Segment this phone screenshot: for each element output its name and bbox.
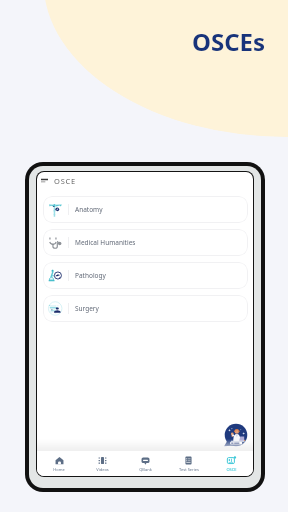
button[interactable]: Pathology bbox=[43, 262, 248, 289]
staticText: OSCE bbox=[226, 467, 237, 472]
staticText: Videos bbox=[96, 467, 109, 472]
button[interactable]: Menu bbox=[38, 174, 51, 187]
staticText: QBank bbox=[139, 467, 152, 472]
staticText: Pathology bbox=[75, 271, 106, 280]
button[interactable]: Test Series bbox=[167, 451, 210, 476]
button[interactable]: Medical Humanities bbox=[43, 229, 248, 256]
staticText: Medical Humanities bbox=[75, 238, 136, 247]
staticText: OSCEs bbox=[192, 25, 266, 58]
button[interactable]: Home bbox=[37, 451, 81, 476]
staticText: Surgery bbox=[75, 304, 99, 313]
staticText: Anatomy bbox=[75, 205, 103, 214]
button[interactable]: Dr Wise assistant bbox=[224, 423, 248, 447]
staticText: Test Series bbox=[179, 467, 199, 472]
button[interactable]: OSCE bbox=[210, 451, 253, 476]
staticText: Home bbox=[53, 467, 65, 472]
button[interactable]: Surgery bbox=[43, 295, 248, 322]
button[interactable]: QBank bbox=[124, 451, 167, 476]
staticText: OSCE bbox=[54, 176, 77, 186]
button[interactable]: Anatomy bbox=[43, 196, 248, 223]
button[interactable]: Videos bbox=[81, 451, 124, 476]
